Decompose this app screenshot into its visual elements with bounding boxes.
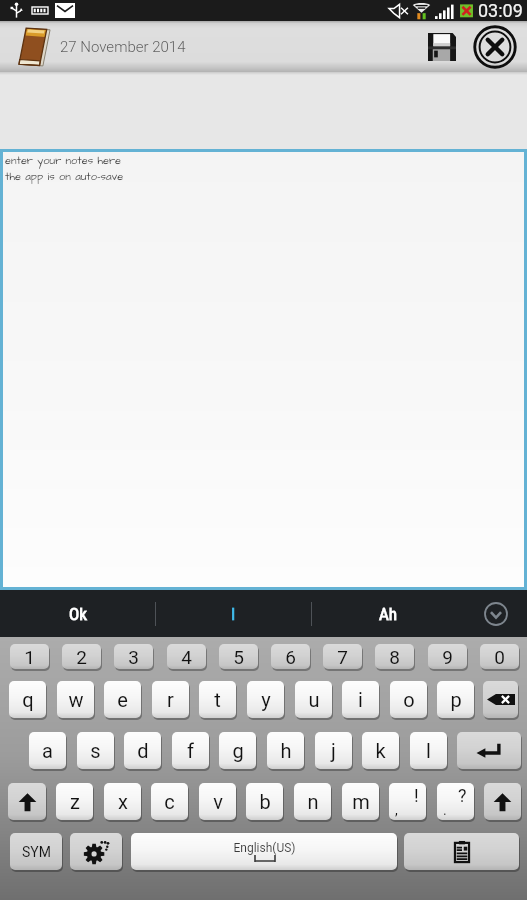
staticText: b [259,790,271,813]
staticText: . [443,802,447,818]
staticText: q [22,688,34,711]
staticText: j [331,739,336,762]
button[interactable]: d [124,732,161,769]
button[interactable]: s [77,732,114,769]
staticText: w [68,688,84,711]
staticText: g [232,739,244,762]
button[interactable]: k [362,732,399,769]
button[interactable]: Ah [312,590,465,637]
staticText: ! [414,785,419,806]
button[interactable]: x [104,783,141,820]
button[interactable]: Clipboard [404,833,519,870]
button[interactable]: 0 [480,644,519,669]
button[interactable]: z [56,783,93,820]
button[interactable]: Enter [457,732,521,769]
button[interactable]: Settings [70,833,122,870]
button[interactable]: q [9,681,46,718]
button[interactable]: n [294,783,331,820]
button[interactable]: Backspace [483,681,518,718]
button[interactable]: 1 [10,644,49,669]
staticText: 27 November 2014 [60,38,186,56]
staticText: d [137,739,149,762]
button[interactable]: b [246,783,283,820]
staticText: u [308,688,320,711]
staticText: z [70,790,80,813]
button[interactable]: e [104,681,141,718]
staticText: o [403,688,415,711]
staticText: 7 [337,646,348,668]
button[interactable]: l [410,732,447,769]
button[interactable]: 7 [323,644,362,669]
button[interactable]: f [172,732,209,769]
button[interactable]: Hide keyboard [465,590,527,637]
button[interactable]: ! [389,783,426,820]
staticText: t [214,688,221,711]
button[interactable]: i [342,681,379,718]
button[interactable]: Save [417,22,467,72]
staticText: Ok [69,604,87,624]
button[interactable]: v [199,783,236,820]
staticText: I [231,604,236,624]
staticText: l [426,739,431,762]
button[interactable]: g [219,732,256,769]
button[interactable]: 3 [114,644,153,669]
button[interactable]: SYM [10,833,62,870]
button[interactable]: c [151,783,188,820]
button[interactable]: English(US) [131,833,397,870]
staticText: 9 [442,646,453,668]
staticText: 8 [389,646,400,668]
staticText: p [450,688,462,711]
staticText: SYM [22,844,51,860]
button[interactable]: u [295,681,332,718]
staticText: n [307,790,319,813]
button[interactable]: p [437,681,474,718]
button[interactable]: ? [437,783,474,820]
staticText: y [261,688,271,711]
staticText: 5 [233,646,244,668]
staticText: h [280,739,292,762]
button[interactable]: enter your notes here [3,152,524,587]
button[interactable]: 5 [219,644,258,669]
button[interactable]: w [57,681,94,718]
staticText: 03:09 [478,0,523,21]
staticText: 6 [285,646,296,668]
staticText: s [90,739,101,762]
staticText: c [164,790,175,813]
staticText: 4 [181,646,192,668]
button[interactable]: 9 [428,644,467,669]
button[interactable]: r [152,681,189,718]
staticText: f [187,739,194,762]
button[interactable]: I [156,590,311,637]
button[interactable]: Shift [484,783,521,820]
staticText: k [375,739,386,762]
button[interactable]: a [29,732,66,769]
button[interactable]: o [390,681,427,718]
button[interactable]: 8 [375,644,414,669]
staticText: m [352,790,370,813]
button[interactable]: 6 [271,644,310,669]
staticText: x [118,790,128,813]
button[interactable]: 4 [167,644,206,669]
staticText: 3 [128,646,139,668]
staticText: English(US) [233,841,296,855]
staticText: a [42,739,53,762]
staticText: Ah [379,604,398,624]
staticText: i [358,688,363,711]
button[interactable]: Ok [0,590,155,637]
staticText: 2 [76,646,87,668]
button[interactable]: 2 [62,644,101,669]
button[interactable]: j [315,732,352,769]
staticText: , [395,802,398,818]
staticText: e [117,688,128,711]
button[interactable]: m [342,783,379,820]
button[interactable]: t [199,681,236,718]
staticText: r [167,688,174,711]
button[interactable]: Shift [8,783,46,820]
button[interactable]: h [267,732,304,769]
staticText: enter your notes here [5,153,122,168]
staticText: the app is on auto-save [5,169,124,184]
staticText: ? [458,785,467,806]
staticText: v [213,790,223,813]
button[interactable]: Close [467,21,523,72]
button[interactable]: y [247,681,284,718]
